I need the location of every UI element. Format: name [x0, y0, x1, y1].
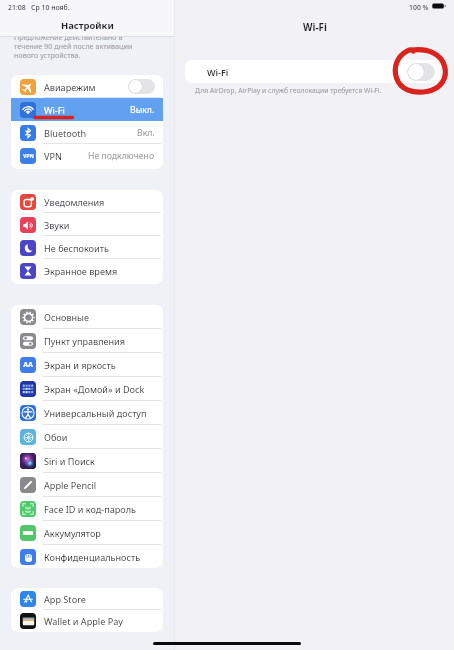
- staticText: Face ID и код-пароль: [44, 503, 136, 515]
- staticText: VPN: [23, 153, 34, 160]
- staticText: Обои: [44, 431, 68, 443]
- button[interactable]: Экранное время: [11, 259, 163, 282]
- button[interactable]: Конфиденциальность: [11, 545, 163, 568]
- button[interactable]: Основные: [11, 305, 163, 329]
- button[interactable]: Bluetooth: [11, 121, 163, 144]
- staticText: Wallet и Apple Pay: [44, 615, 123, 627]
- staticText: Вкл.: [137, 127, 155, 139]
- staticText: Конфиденциальность: [44, 551, 141, 563]
- button[interactable]: Face ID и код-пароль: [11, 497, 163, 521]
- staticText: 100 %: [409, 3, 429, 12]
- staticText: Экран и яркость: [44, 359, 116, 371]
- button[interactable]: VPN: [11, 144, 163, 167]
- button[interactable]: Уведомления: [11, 190, 163, 213]
- staticText: Универсальный доступ: [44, 407, 147, 419]
- button[interactable]: Siri и Поиск: [11, 449, 163, 473]
- button[interactable]: Не беспокоить: [11, 236, 163, 259]
- staticText: Wi-Fi: [303, 21, 327, 34]
- button[interactable]: AA: [11, 353, 163, 377]
- button[interactable]: Авиарежим: [11, 75, 163, 98]
- button[interactable]: Экран «Домой» и Dock: [11, 377, 163, 401]
- staticText: Bluetooth: [44, 127, 87, 139]
- staticText: Авиарежим: [44, 81, 96, 93]
- button[interactable]: App Store: [11, 588, 163, 610]
- staticText: Пункт управления: [44, 335, 125, 347]
- staticText: Wi-Fi: [207, 66, 229, 78]
- staticText: Уведомления: [44, 196, 105, 208]
- staticText: Предложение действительно в течение 90 д…: [14, 32, 133, 61]
- button[interactable]: Обои: [11, 425, 163, 449]
- staticText: App Store: [44, 593, 86, 605]
- staticText: VPN: [44, 150, 62, 162]
- staticText: Для AirDrop, AirPlay и служб геолокации …: [195, 86, 382, 95]
- button[interactable]: Универсальный доступ: [11, 401, 163, 425]
- staticText: Не подключено: [88, 150, 155, 162]
- button[interactable]: Аккумулятор: [11, 521, 163, 545]
- button[interactable]: Пункт управления: [11, 329, 163, 353]
- staticText: Настройки: [61, 19, 114, 32]
- staticText: Экран «Домой» и Dock: [44, 383, 145, 395]
- staticText: 21:08 Ср 10 нояб.: [8, 3, 70, 12]
- staticText: Apple Pencil: [44, 479, 97, 491]
- button[interactable]: Звуки: [11, 213, 163, 236]
- button[interactable]: Airplane mode, off: [128, 79, 155, 94]
- staticText: AA: [23, 360, 33, 370]
- staticText: Экранное время: [44, 265, 118, 277]
- button[interactable]: Apple Pencil: [11, 473, 163, 497]
- button[interactable]: Wi-Fi: [185, 60, 440, 83]
- staticText: Wi-Fi: [44, 104, 65, 116]
- staticText: Siri и Поиск: [44, 455, 95, 467]
- staticText: Основные: [44, 311, 90, 323]
- button[interactable]: Wallet и Apple Pay: [11, 610, 163, 632]
- staticText: Выкл.: [130, 104, 155, 116]
- staticText: Аккумулятор: [44, 527, 101, 539]
- button[interactable]: Wi-Fi, off: [407, 63, 435, 81]
- button[interactable]: Wi-Fi: [11, 98, 163, 121]
- staticText: Звуки: [44, 219, 70, 231]
- staticText: Не беспокоить: [44, 242, 109, 254]
